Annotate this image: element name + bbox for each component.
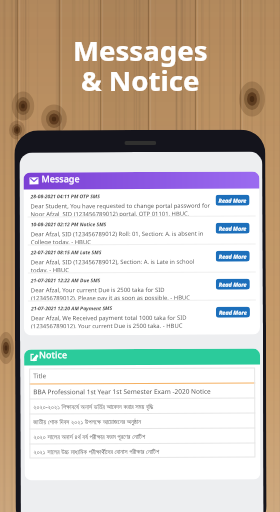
button[interactable]: Title bbox=[29, 368, 255, 383]
staticText: ২০২১ সালের উচ্চ মাধ্যমিক পরীক্ষার্থীদের … bbox=[33, 447, 159, 456]
staticText: 21-07-2021 12:20 AM Payment SMS bbox=[31, 305, 113, 312]
staticText: Read More bbox=[219, 309, 247, 316]
staticText: Dear Afzal, Your current Due is 2500 tak… bbox=[31, 286, 211, 300]
staticText: 10-08-2021 02:12 PM Notice SMS bbox=[31, 221, 107, 228]
staticText: Read More bbox=[219, 225, 247, 232]
staticText: 28-08-2021 04:11 PM OTP SMS bbox=[30, 193, 100, 200]
staticText: Read More bbox=[219, 281, 247, 288]
staticText: Dear Afzal, SID (123456789012), Section:… bbox=[31, 258, 211, 272]
button[interactable]: ২০২০ সালের অনার্স ৪র্থ বর্ষ পরীক্ষার ফরম… bbox=[29, 429, 255, 443]
staticText: 22-07-2021 08:15 AM Late SMS bbox=[31, 249, 102, 256]
staticText: 21-07-2021 12:22 AM Due SMS bbox=[31, 277, 101, 284]
button[interactable]: Read More bbox=[216, 251, 250, 262]
button[interactable]: 21-07-2021 12:22 AM Due SMS bbox=[24, 273, 260, 300]
staticText: Notice bbox=[39, 349, 67, 360]
staticText: ২০২০ সালের অনার্স ৪র্থ বর্ষ পরীক্ষার ফরম… bbox=[33, 432, 145, 441]
button[interactable]: 22-07-2021 08:15 AM Late SMS bbox=[24, 245, 260, 272]
button[interactable]: ২০২০-২০২১ শিক্ষাবর্ষে অনার্স ভর্তির আবেদ… bbox=[29, 399, 255, 413]
button[interactable]: Read More bbox=[216, 307, 250, 318]
button[interactable]: 10-08-2021 02:12 PM Notice SMS bbox=[24, 217, 260, 244]
button[interactable]: BBA Professional 1st Year 1st Semester E… bbox=[29, 384, 255, 398]
button[interactable]: জাতীয় শোক দিবস ২০২১ উপলক্ষে আয়োজনের অন… bbox=[29, 414, 255, 428]
staticText: & Notice bbox=[81, 61, 200, 99]
staticText: Dear Afzal, SID (123456789012) Roll: 01,… bbox=[31, 230, 211, 244]
staticText: BBA Professional 1st Year 1st Semester E… bbox=[33, 387, 211, 396]
button[interactable]: 21-07-2021 12:20 AM Payment SMS bbox=[24, 301, 260, 328]
staticText: Title bbox=[33, 371, 46, 380]
staticText: Read More bbox=[218, 197, 246, 204]
staticText: Message bbox=[41, 172, 80, 184]
button[interactable]: ২০২১ সালের উচ্চ মাধ্যমিক পরীক্ষার্থীদের … bbox=[29, 444, 255, 458]
button[interactable]: Read More bbox=[216, 223, 250, 234]
staticText: ২০২০-২০২১ শিক্ষাবর্ষে অনার্স ভর্তির আবেদ… bbox=[33, 402, 153, 411]
staticText: Read More bbox=[219, 253, 247, 260]
button[interactable]: Notice bbox=[24, 349, 260, 365]
button[interactable]: Message bbox=[23, 172, 259, 189]
button[interactable]: Read More bbox=[216, 279, 250, 290]
staticText: Messages bbox=[73, 31, 208, 69]
staticText: Dear Afzal, We Received payment total 10… bbox=[31, 314, 211, 328]
staticText: জাতীয় শোক দিবস ২০২১ উপলক্ষে আয়োজনের অন… bbox=[33, 417, 141, 426]
button[interactable]: 28-08-2021 04:11 PM OTP SMS bbox=[23, 189, 260, 216]
staticText: Dear Student, You have requested to chan… bbox=[31, 202, 211, 216]
button[interactable]: Read More bbox=[215, 195, 249, 206]
